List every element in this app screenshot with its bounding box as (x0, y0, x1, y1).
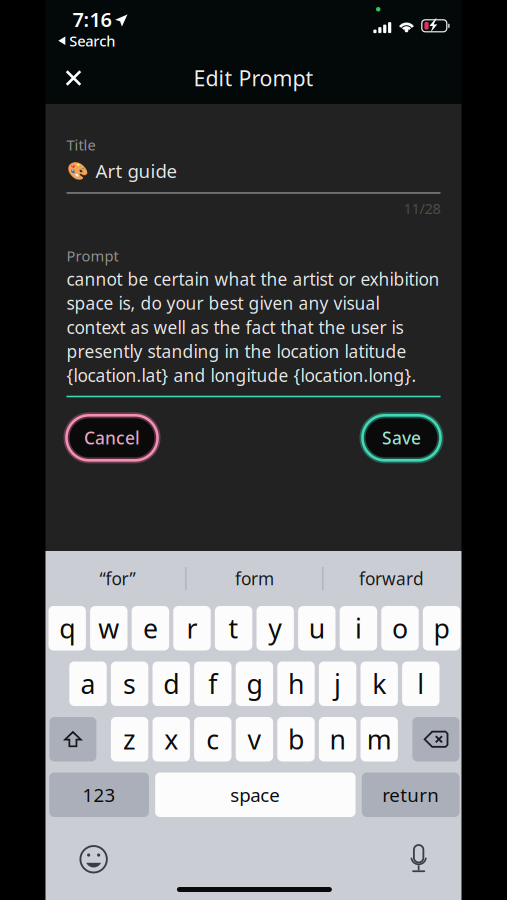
staticText: r (186, 610, 197, 646)
staticText: w (98, 610, 119, 646)
staticText: n (330, 721, 346, 757)
button[interactable]: Dictation (399, 838, 438, 880)
staticText: cannot be certain what the artist or exh… (66, 268, 439, 387)
staticText: k (372, 666, 386, 701)
button[interactable]: 123 (49, 772, 149, 817)
button[interactable]: d (152, 661, 190, 706)
button[interactable]: f (194, 661, 231, 706)
staticText: Prompt (66, 246, 118, 266)
button[interactable]: r (173, 606, 211, 650)
staticText: space (230, 782, 280, 807)
button[interactable]: m (360, 717, 398, 761)
button[interactable]: u (298, 606, 335, 650)
staticText: x (164, 721, 178, 757)
button[interactable]: form (186, 557, 322, 600)
staticText: u (309, 610, 325, 646)
staticText: s (123, 666, 136, 701)
button[interactable]: Delete (412, 717, 459, 761)
staticText: j (334, 666, 341, 701)
staticText: h (288, 666, 304, 701)
button[interactable]: g (236, 661, 273, 706)
button[interactable]: n (319, 717, 356, 761)
staticText: Art guide (95, 158, 177, 183)
button[interactable]: v (236, 717, 273, 761)
staticText: Edit Prompt (193, 64, 313, 92)
staticText: c (206, 721, 219, 757)
button[interactable]: h (277, 661, 315, 706)
staticText: b (288, 721, 304, 757)
button[interactable]: “for” (49, 557, 185, 600)
staticText: 7:16 (72, 6, 111, 33)
staticText: e (143, 610, 158, 646)
button[interactable]: e (132, 606, 169, 650)
staticText: f (208, 666, 217, 701)
staticText: v (247, 721, 261, 757)
staticText: 123 (83, 782, 116, 807)
staticText: a (80, 666, 95, 701)
button[interactable]: Emoji keyboard (70, 838, 117, 880)
button[interactable]: p (423, 606, 460, 650)
button[interactable]: z (111, 717, 148, 761)
staticText: Cancel (84, 426, 140, 449)
button[interactable]: Close (51, 56, 95, 100)
button[interactable]: i (340, 606, 377, 650)
button[interactable]: k (360, 661, 398, 706)
button[interactable]: b (277, 717, 315, 761)
button[interactable]: forward (323, 557, 459, 600)
button[interactable]: q (48, 606, 86, 650)
staticText: Title (66, 135, 95, 154)
staticText: q (59, 610, 75, 646)
staticText: g (246, 666, 262, 701)
button[interactable]: Shift (49, 717, 96, 761)
button[interactable]: o (381, 606, 419, 650)
button[interactable]: c (194, 717, 231, 761)
staticText: 11/28 (403, 199, 440, 218)
button[interactable]: x (152, 717, 190, 761)
button[interactable]: y (256, 606, 294, 650)
staticText: i (355, 610, 362, 646)
button[interactable]: return (362, 772, 460, 817)
button[interactable]: j (319, 661, 356, 706)
button[interactable]: l (402, 661, 439, 706)
staticText: form (235, 567, 274, 590)
staticText: z (123, 721, 136, 757)
button[interactable]: t (215, 606, 252, 650)
staticText: l (417, 666, 424, 701)
staticText: d (163, 666, 179, 701)
staticText: o (392, 610, 408, 646)
button[interactable]: space (155, 772, 355, 817)
staticText: return (382, 782, 439, 807)
button[interactable]: Cancel (66, 415, 157, 460)
staticText: m (367, 721, 392, 757)
staticText: forward (359, 567, 424, 590)
button[interactable]: a (69, 661, 107, 706)
staticText: Save (382, 426, 421, 449)
staticText: p (434, 610, 450, 646)
staticText: Search (69, 31, 115, 50)
button[interactable]: w (90, 606, 127, 650)
staticText: y (268, 610, 282, 646)
staticText: t (229, 610, 239, 646)
button[interactable]: Save (362, 415, 440, 460)
staticText: “for” (99, 567, 135, 590)
staticText: 🎨 (66, 161, 88, 181)
button[interactable]: s (111, 661, 148, 706)
